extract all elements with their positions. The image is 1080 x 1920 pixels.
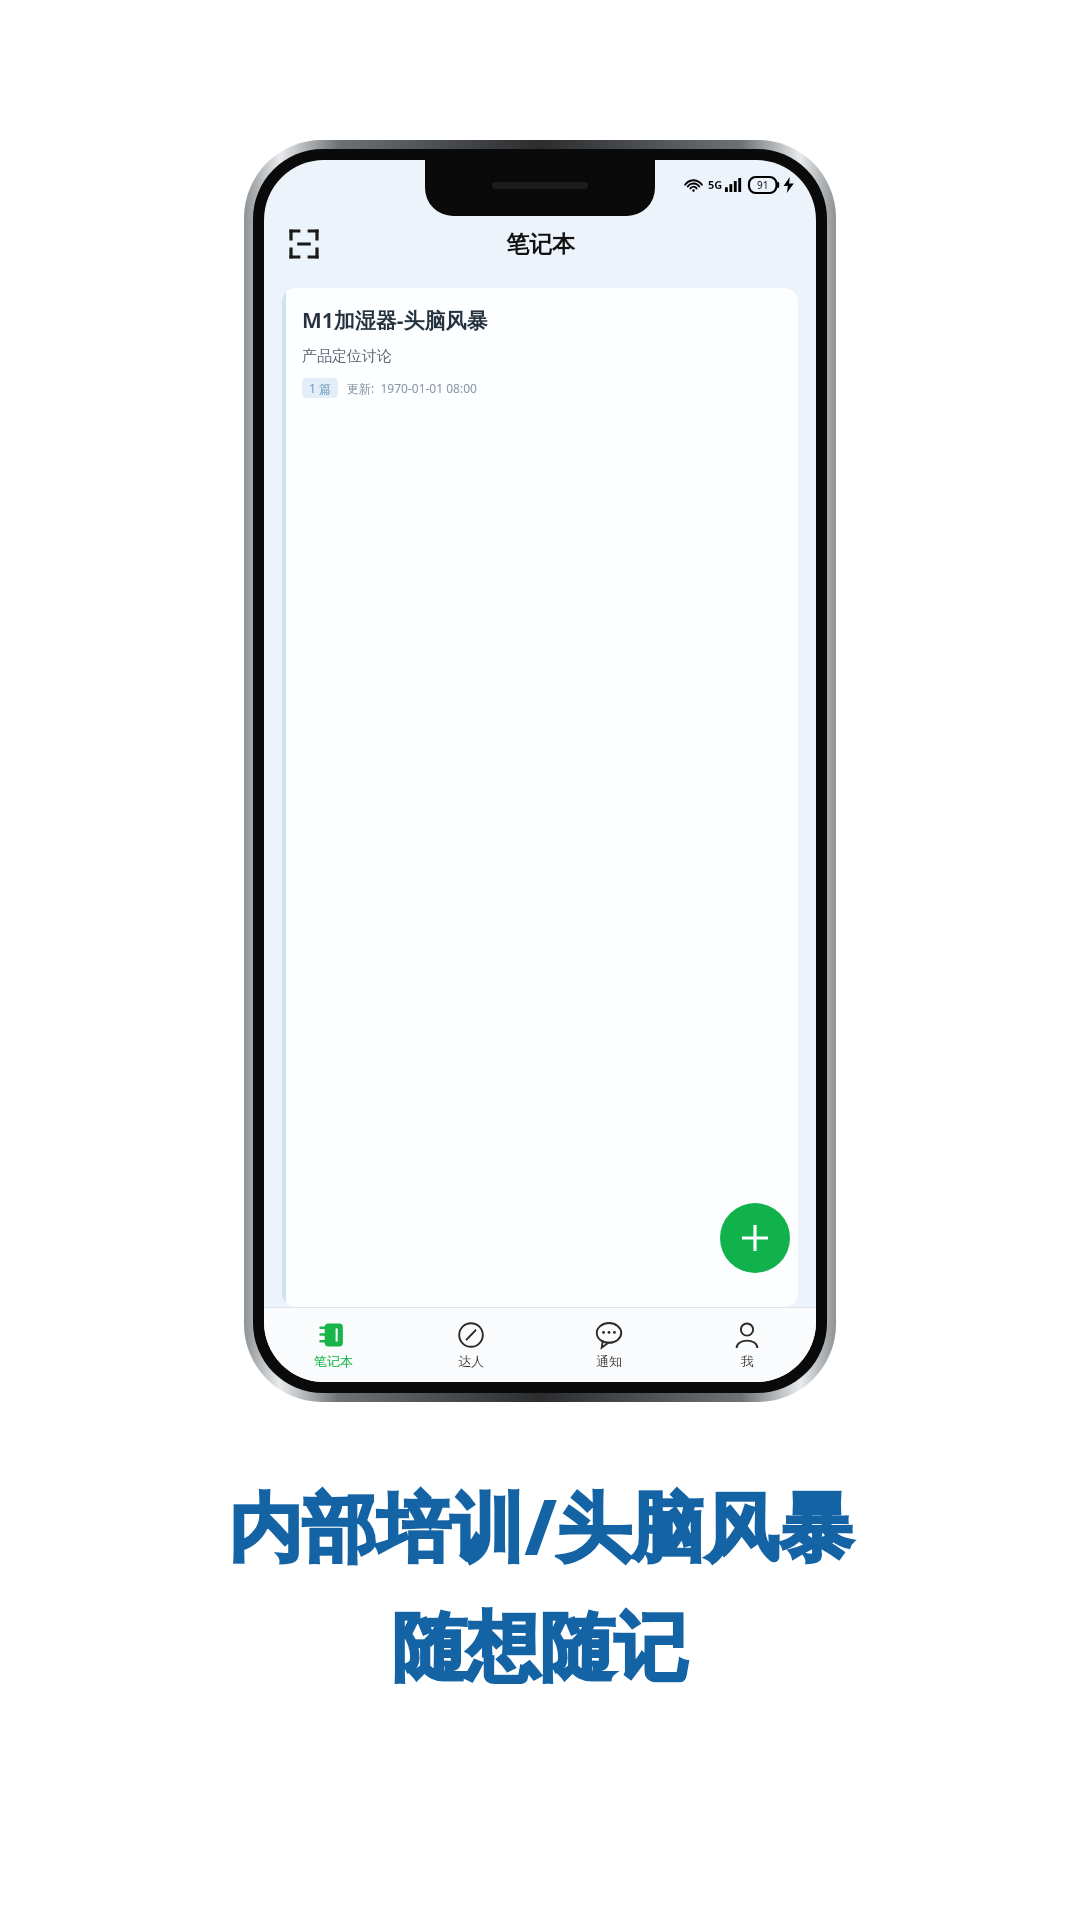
staticText: 达人: [458, 1353, 484, 1369]
staticText: 91: [757, 178, 769, 192]
staticText: 内部培训/头脑风暴: [228, 1475, 853, 1576]
button[interactable]: 通知: [540, 1308, 678, 1382]
button[interactable]: M1加湿器-头脑风暴: [282, 288, 798, 1307]
staticText: 产品定位讨论: [302, 347, 392, 366]
staticText: 更新: 1970-01-01 08:00: [347, 380, 477, 396]
button[interactable]: 笔记本: [264, 1308, 402, 1382]
button[interactable]: Add note: [720, 1203, 790, 1273]
staticText: 笔记本: [314, 1353, 353, 1369]
staticText: 笔记本: [506, 230, 575, 259]
staticText: 5G: [708, 177, 723, 192]
button[interactable]: 我: [678, 1308, 816, 1382]
button[interactable]: Scan: [280, 220, 328, 268]
staticText: 1 篇: [309, 380, 331, 396]
staticText: M1加湿器-头脑风暴: [302, 306, 488, 335]
button[interactable]: 达人: [402, 1308, 540, 1382]
staticText: 我: [741, 1353, 754, 1369]
staticText: 通知: [596, 1353, 622, 1369]
staticText: 随想随记: [392, 1602, 688, 1695]
